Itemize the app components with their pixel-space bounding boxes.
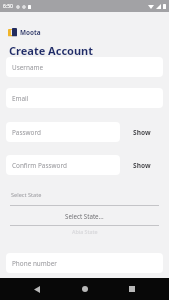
button[interactable]: Email bbox=[6, 88, 163, 108]
staticText: Username bbox=[12, 63, 44, 72]
staticText: Phone number bbox=[12, 259, 57, 268]
staticText: Moota bbox=[20, 28, 41, 37]
button[interactable]: Phone number bbox=[6, 253, 163, 273]
staticText: Select State bbox=[11, 191, 42, 199]
button[interactable]: Back bbox=[26, 278, 48, 300]
button[interactable]: Recent apps bbox=[121, 278, 143, 300]
staticText: Confirm Password bbox=[12, 161, 67, 170]
button[interactable]: Show bbox=[120, 155, 163, 175]
staticText: Email bbox=[12, 94, 29, 103]
staticText: Abia State bbox=[72, 228, 98, 235]
button[interactable]: Moota bbox=[8, 28, 41, 37]
staticText: Show bbox=[133, 161, 151, 170]
staticText: Show bbox=[133, 128, 151, 137]
staticText: 6:50 bbox=[3, 3, 13, 10]
staticText: Select State... bbox=[65, 212, 104, 220]
button[interactable]: Username bbox=[6, 57, 163, 77]
button[interactable]: Select State picker bbox=[10, 205, 159, 237]
button[interactable]: Confirm Password bbox=[6, 155, 120, 175]
button[interactable]: Home bbox=[74, 278, 96, 300]
button[interactable]: Password bbox=[6, 122, 120, 142]
staticText: Create Account bbox=[9, 43, 94, 58]
button[interactable]: Show bbox=[120, 122, 163, 142]
staticText: Password bbox=[12, 128, 41, 137]
